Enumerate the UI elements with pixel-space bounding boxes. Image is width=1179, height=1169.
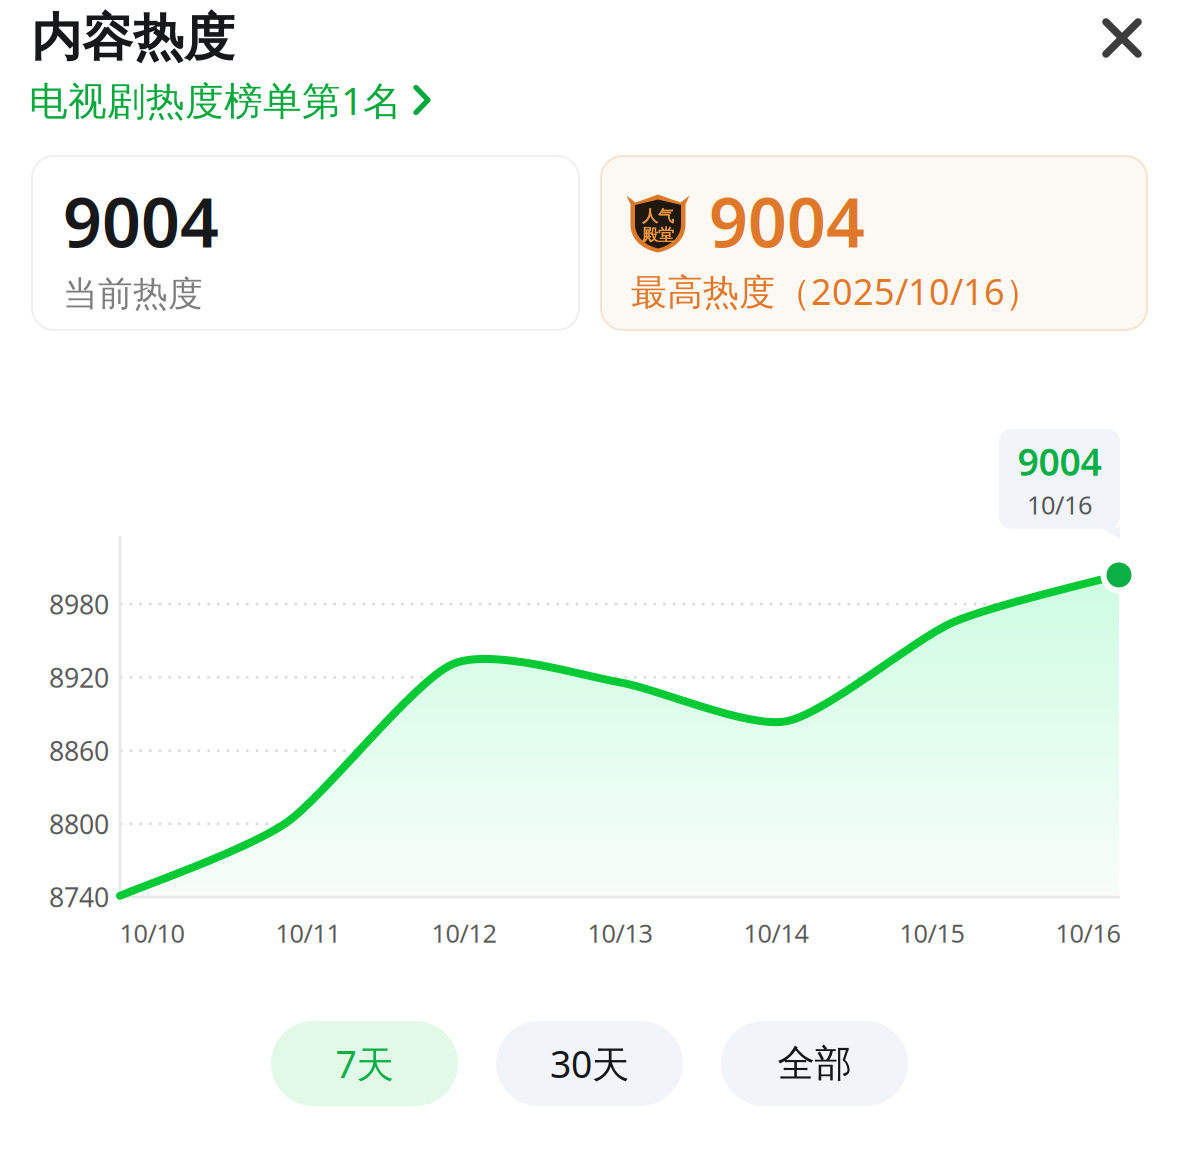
staticText: 8740 (49, 879, 109, 915)
button[interactable]: 30天 (496, 1021, 683, 1106)
staticText: 7天 (335, 1039, 393, 1088)
button[interactable]: 电视剧热度榜单第1名 (29, 72, 649, 128)
staticText: 10/11 (275, 916, 340, 950)
staticText: 8980 (49, 586, 109, 622)
staticText: 当前热度 (63, 273, 203, 315)
staticText: 最高热度（2025/10/16） (631, 267, 1041, 315)
staticText: 9004 (709, 176, 865, 266)
staticText: 8800 (49, 806, 109, 841)
staticText: 9004 (63, 176, 219, 266)
staticText: 内容热度 (31, 7, 235, 69)
staticText: 8860 (49, 733, 109, 768)
staticText: 人气 (642, 206, 674, 226)
staticText: 8920 (49, 660, 109, 695)
staticText: 10/12 (431, 916, 496, 950)
staticText: 全部 (777, 1041, 851, 1086)
staticText: 30天 (550, 1039, 629, 1088)
staticText: 10/13 (587, 916, 652, 950)
staticText: 10/16 (1055, 916, 1120, 950)
staticText: 10/15 (899, 916, 964, 950)
staticText: 9004 (1017, 436, 1101, 486)
staticText: 10/14 (743, 916, 808, 950)
staticText: 电视剧热度榜单第1名 (29, 74, 402, 126)
staticText: 10/10 (119, 916, 184, 950)
button[interactable]: 7天 (271, 1021, 458, 1106)
button[interactable]: 全部 (721, 1021, 908, 1106)
staticText: 殿堂 (642, 225, 674, 245)
button[interactable]: 关闭 (1080, 0, 1164, 80)
staticText: 10/16 (1027, 488, 1092, 522)
